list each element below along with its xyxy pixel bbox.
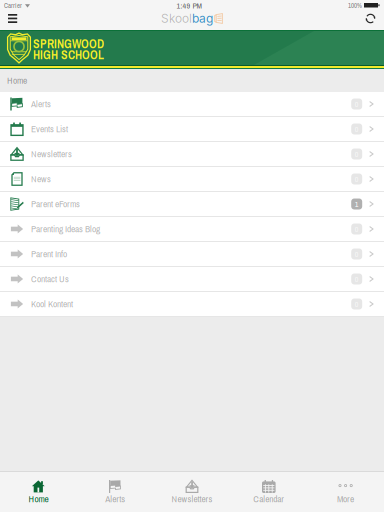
staticText: 100%: [348, 1, 362, 10]
staticText: HIGH SCHOOL: [33, 47, 104, 63]
button[interactable]: Kool Kontent: [0, 292, 384, 317]
button[interactable]: Calendar: [230, 472, 307, 512]
staticText: 0: [355, 124, 359, 134]
staticText: 0: [355, 174, 359, 184]
staticText: Skool: [161, 11, 192, 26]
button[interactable]: Refresh: [357, 11, 384, 30]
staticText: Events List: [31, 123, 68, 135]
staticText: Parent eForms: [31, 198, 80, 210]
button[interactable]: Alerts: [77, 472, 154, 512]
staticText: News: [31, 173, 51, 185]
button[interactable]: Parenting Ideas Blog: [0, 217, 384, 242]
staticText: Carrier: [4, 1, 22, 10]
staticText: 0: [355, 149, 359, 159]
staticText: 0: [355, 224, 359, 234]
staticText: Calendar: [253, 493, 284, 505]
button[interactable]: Menu: [0, 11, 25, 30]
staticText: Kool Kontent: [31, 298, 73, 310]
staticText: Alerts: [31, 98, 51, 110]
button[interactable]: Newsletters: [154, 472, 230, 512]
button[interactable]: Contact Us: [0, 267, 384, 292]
button[interactable]: News: [0, 167, 384, 192]
button[interactable]: Alerts: [0, 92, 384, 117]
staticText: Newsletters: [171, 493, 212, 505]
button[interactable]: Parent eForms: [0, 192, 384, 217]
button[interactable]: Home: [0, 472, 77, 512]
staticText: Parenting Ideas Blog: [31, 223, 100, 235]
staticText: SPRINGWOOD: [33, 36, 104, 52]
staticText: 1:49 PM: [176, 0, 201, 11]
staticText: Contact Us: [31, 273, 69, 285]
staticText: 0: [355, 274, 359, 284]
staticText: Home: [7, 74, 27, 87]
staticText: 0: [355, 249, 359, 259]
button[interactable]: Newsletters: [0, 142, 384, 167]
staticText: bag: [192, 11, 213, 26]
staticText: 0: [355, 299, 359, 309]
button[interactable]: Parent Info: [0, 242, 384, 267]
staticText: 1: [355, 199, 359, 209]
staticText: More: [337, 493, 354, 505]
staticText: 0: [355, 99, 359, 109]
staticText: Parent Info: [31, 248, 67, 260]
button[interactable]: More: [307, 472, 384, 512]
button[interactable]: Events List: [0, 117, 384, 142]
staticText: Newsletters: [31, 148, 72, 160]
staticText: Alerts: [105, 493, 125, 505]
staticText: Home: [28, 493, 48, 505]
